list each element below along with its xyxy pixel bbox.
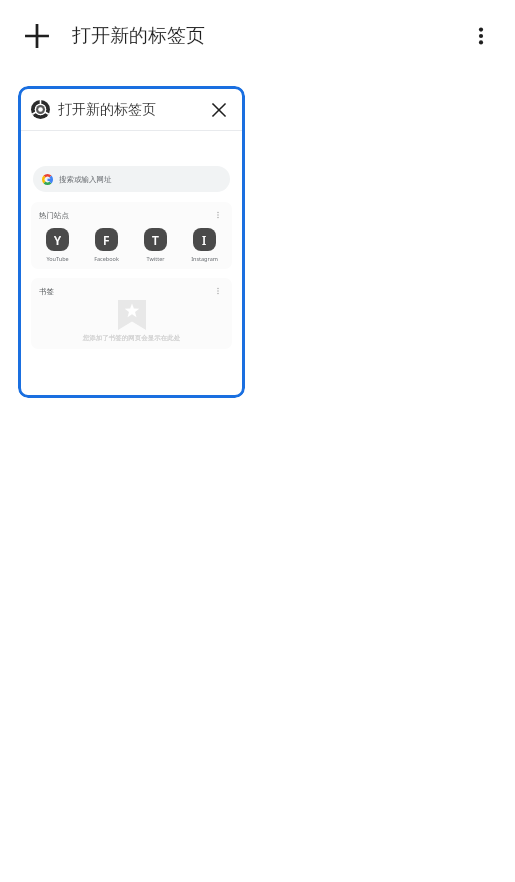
button[interactable]: New tab <box>13 12 61 60</box>
staticText: 您添加了书签的网页会显示在此处 <box>39 334 224 342</box>
staticText: 书签 <box>39 287 212 296</box>
staticText: 打开新的标签页 <box>58 101 202 119</box>
staticText: Instagram <box>191 255 218 262</box>
button[interactable]: Close tab <box>206 97 232 123</box>
button[interactable]: 打开新的标签页 <box>18 86 245 398</box>
button[interactable]: T <box>137 228 173 262</box>
button[interactable]: Y <box>39 228 75 262</box>
staticText: YouTube <box>46 255 69 262</box>
button[interactable]: F <box>88 228 124 262</box>
staticText: Twitter <box>146 255 165 262</box>
staticText: T <box>152 232 159 248</box>
staticText: 搜索或输入网址 <box>59 175 112 184</box>
staticText: Y <box>54 232 62 248</box>
button[interactable]: Section options <box>212 209 224 221</box>
staticText: F <box>103 232 110 248</box>
button[interactable]: Section options <box>212 285 224 297</box>
button[interactable]: More options <box>457 12 505 60</box>
staticText: 打开新的标签页 <box>72 24 205 48</box>
button[interactable]: I <box>186 228 222 262</box>
staticText: Facebook <box>94 255 119 262</box>
staticText: I <box>202 232 207 248</box>
staticText: 热门站点 <box>39 211 212 220</box>
button[interactable]: 搜索或输入网址 <box>33 166 230 192</box>
